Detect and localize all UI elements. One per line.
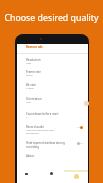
button[interactable]: Frame rate	[17, 69, 88, 81]
staticText: 720p	[26, 62, 32, 65]
button[interactable]: Recent apps	[25, 173, 28, 175]
button[interactable]: Resolution	[17, 57, 88, 69]
button[interactable]: About	[17, 153, 88, 165]
button[interactable]: Home	[50, 172, 53, 175]
staticText: Auto	[26, 101, 31, 104]
button[interactable]: Remove ads	[17, 44, 88, 53]
staticText: Orientation	[26, 97, 42, 101]
staticText: Hide tapered window during recording	[26, 141, 65, 149]
button[interactable]: Bit rate	[17, 82, 88, 94]
staticText: Remove ads	[26, 45, 43, 49]
staticText: Countdown before start	[26, 112, 59, 116]
staticText: Choose desired quality	[0, 12, 103, 24]
button[interactable]: Help	[84, 101, 89, 106]
staticText: 30 FPS	[26, 74, 33, 77]
button[interactable]: Record	[74, 174, 79, 179]
staticText: Allow recording audio from microphone	[26, 129, 54, 135]
staticText: Resolution	[26, 58, 41, 62]
staticText: 3	[26, 116, 28, 119]
staticText: 4 Mbps	[26, 87, 34, 90]
staticText: Frame rate	[26, 70, 41, 74]
staticText: About	[26, 154, 35, 158]
button[interactable]: Orientation	[17, 96, 88, 108]
button[interactable]: Countdown before start	[17, 111, 88, 123]
button[interactable]: Record audio	[17, 124, 88, 136]
staticText: Record audio	[26, 125, 44, 129]
staticText: Bit rate	[26, 83, 36, 87]
button[interactable]: Hide tapered window during recording	[17, 140, 88, 152]
